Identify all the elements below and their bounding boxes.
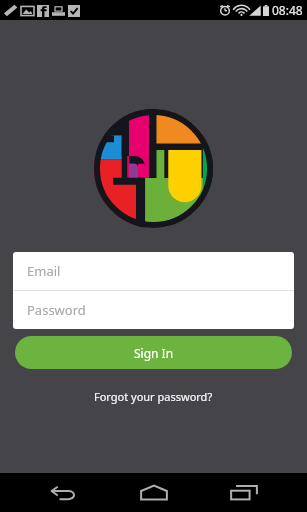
staticText: Password [27,301,86,319]
staticText: Email [27,262,61,280]
button[interactable]: Password [13,291,294,329]
button[interactable]: Sign In [15,336,292,369]
button[interactable]: Home [124,475,184,510]
staticText: 08:48 [272,2,303,18]
staticText: Sign In [134,345,174,361]
button[interactable]: Forgot your password? [88,386,219,407]
button[interactable]: Recent apps [214,475,274,510]
staticText: Forgot your password? [94,389,213,404]
button[interactable]: Email [13,252,294,290]
button[interactable]: Back [33,475,94,510]
